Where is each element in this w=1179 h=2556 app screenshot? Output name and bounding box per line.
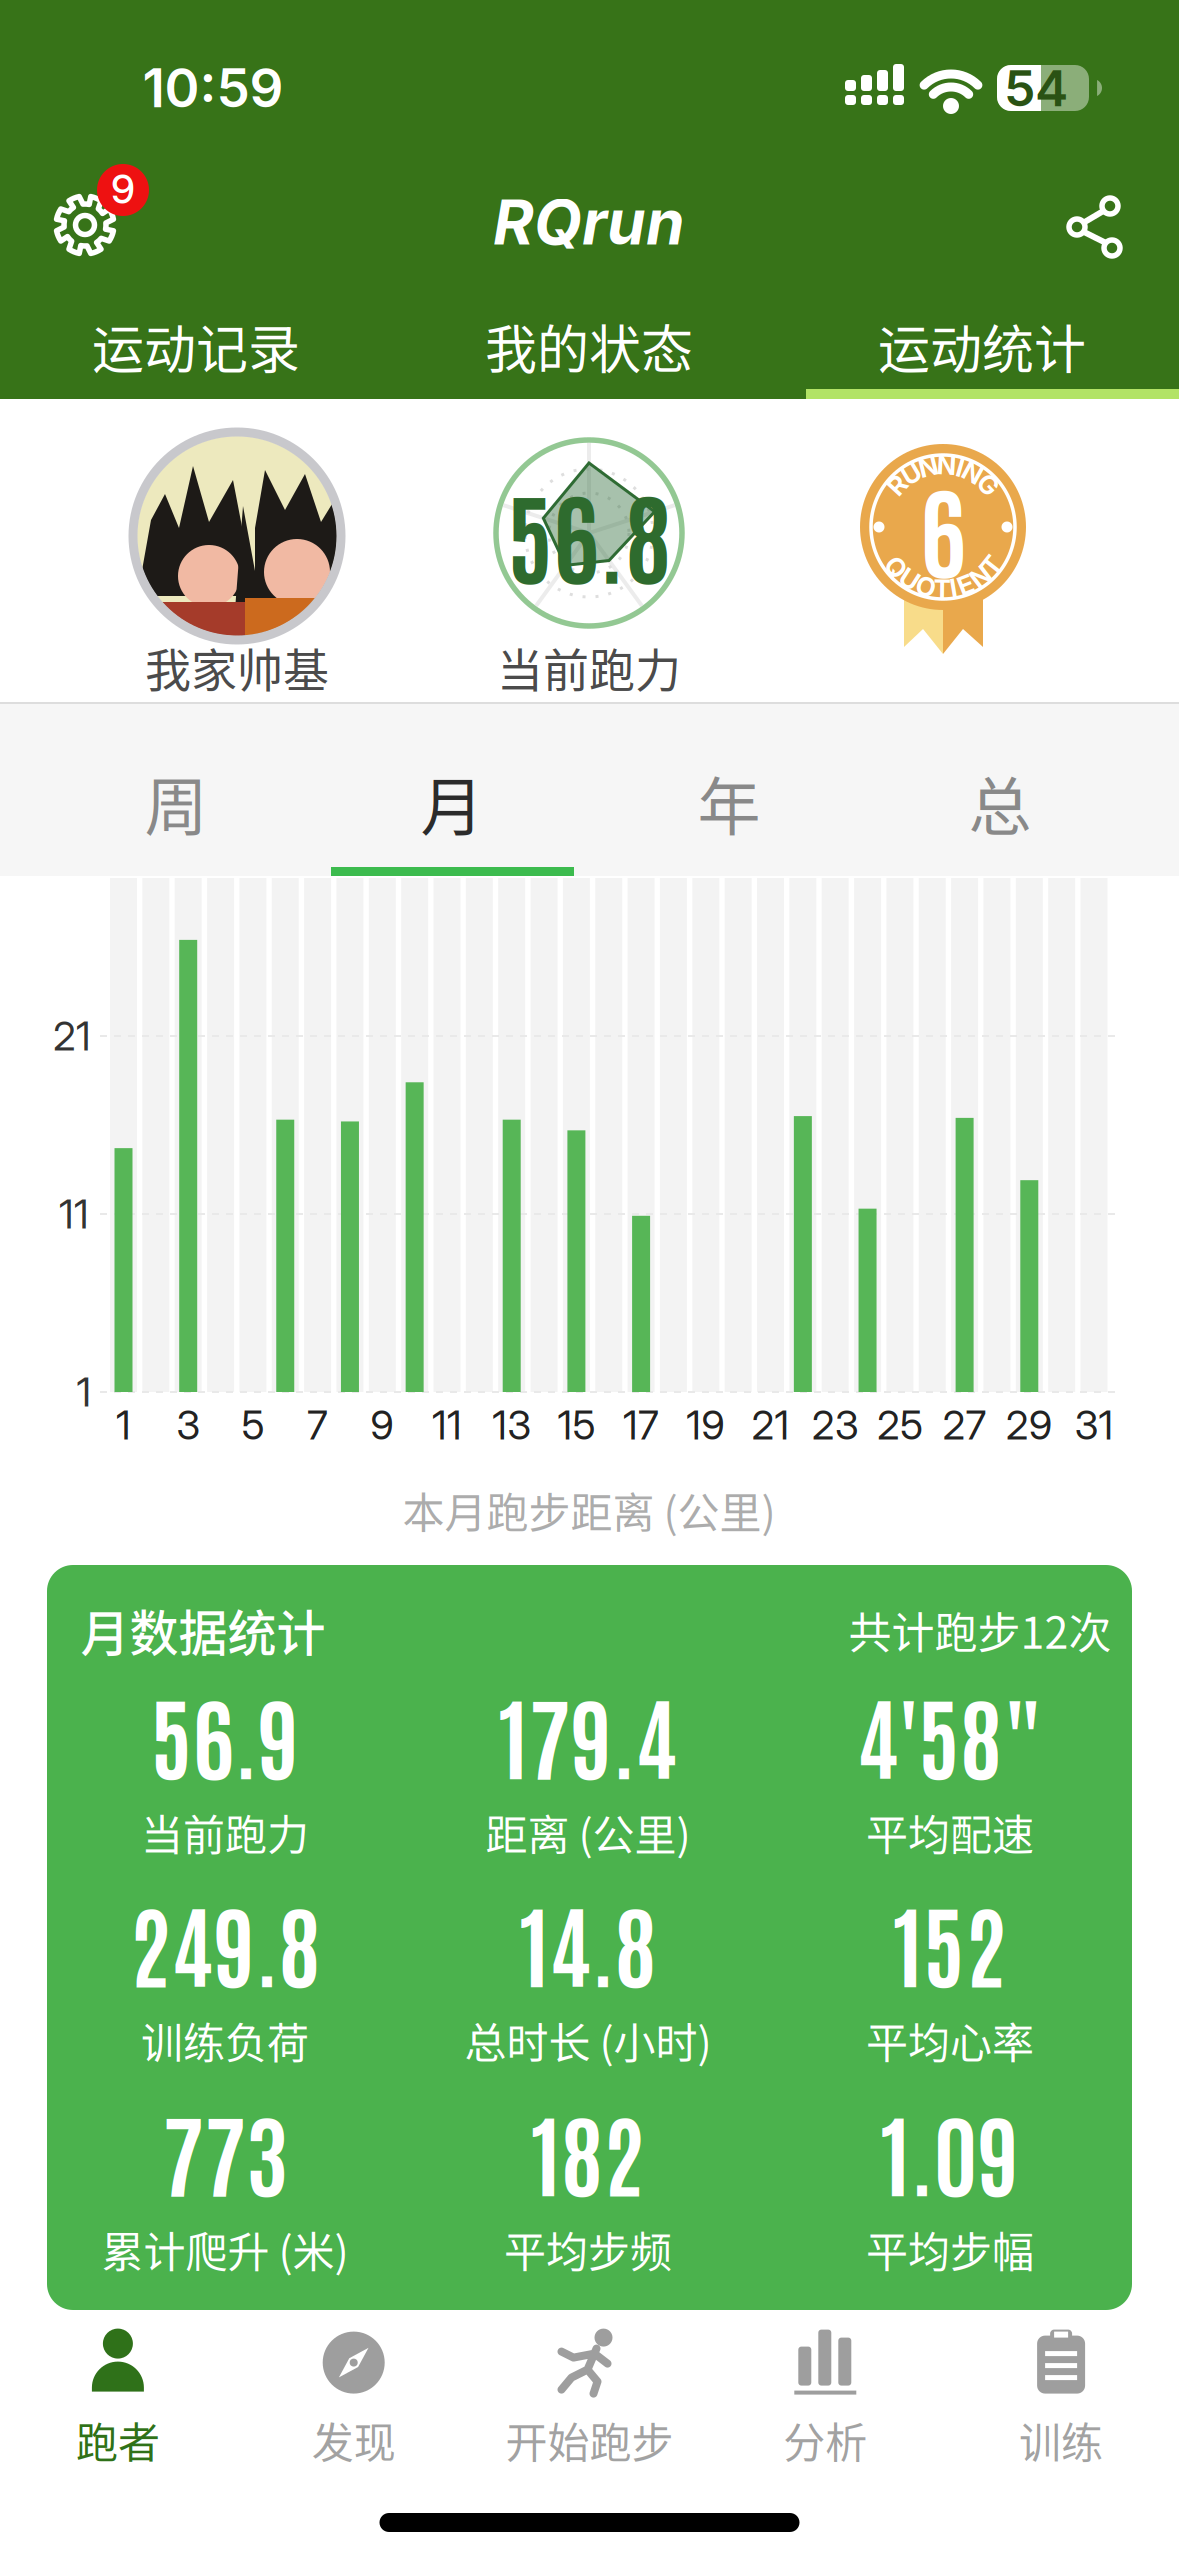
staticText: 23: [812, 1401, 859, 1449]
staticText: 11: [432, 1401, 462, 1449]
button[interactable]: 发现: [254, 2330, 454, 2470]
staticText: 月数据统计: [80, 1594, 325, 1665]
staticText: 训练: [1019, 2410, 1103, 2470]
staticText: 31: [1074, 1401, 1113, 1449]
staticText: 14.8: [519, 1883, 656, 2000]
staticText: R: [889, 469, 906, 501]
staticText: 我家帅基: [145, 634, 329, 700]
staticText: N: [937, 449, 957, 481]
button[interactable]: 运动统计: [785, 306, 1178, 386]
staticText: G: [979, 469, 998, 500]
staticText: U: [902, 458, 921, 489]
staticText: 周: [144, 756, 207, 848]
staticText: I: [950, 572, 957, 604]
staticText: 距离 (公里): [485, 1802, 690, 1863]
button[interactable]: Settings: [23, 140, 163, 280]
staticText: 5: [241, 1401, 264, 1449]
button[interactable]: 训练: [961, 2330, 1161, 2470]
staticText: 21: [53, 1012, 91, 1060]
staticText: 本月跑步距离 (公里): [402, 1480, 775, 1540]
staticText: I: [957, 452, 964, 483]
staticText: 54: [1004, 58, 1068, 118]
staticText: 25: [877, 1401, 923, 1449]
staticText: 平均心率: [866, 2010, 1034, 2071]
staticText: 当前跑力: [497, 634, 681, 700]
staticText: N: [971, 561, 991, 592]
staticText: E: [958, 569, 974, 600]
staticText: 9: [111, 165, 135, 213]
staticText: 17: [623, 1401, 659, 1449]
staticText: 1: [116, 1401, 131, 1449]
staticText: U: [900, 563, 919, 595]
staticText: 56.8: [507, 468, 671, 598]
button[interactable]: 开始跑步: [474, 2330, 704, 2470]
staticText: 179.4: [498, 1675, 677, 1792]
staticText: 累计爬升 (米): [101, 2219, 348, 2280]
staticText: 6: [920, 462, 966, 592]
staticText: 11: [59, 1190, 89, 1238]
button[interactable]: 跑者: [18, 2330, 218, 2470]
staticText: 运动记录: [92, 308, 300, 384]
staticText: O: [916, 571, 936, 602]
staticText: T: [983, 550, 1000, 581]
staticText: 平均步幅: [866, 2219, 1034, 2280]
staticText: 56.9: [150, 1675, 299, 1792]
staticText: 总时长 (小时): [464, 2010, 711, 2071]
staticText: 1.09: [880, 2092, 1019, 2209]
staticText: 773: [162, 2092, 288, 2209]
staticText: T: [934, 573, 951, 605]
staticText: 发现: [312, 2410, 396, 2470]
button[interactable]: 月: [332, 742, 572, 862]
staticText: 年: [697, 756, 760, 848]
button[interactable]: 年: [609, 742, 849, 862]
staticText: 10:59: [142, 56, 283, 120]
staticText: 3: [176, 1401, 200, 1449]
staticText: 19: [686, 1401, 725, 1449]
button[interactable]: 总: [880, 742, 1120, 862]
staticText: N: [963, 457, 983, 488]
button[interactable]: 我的状态: [392, 306, 785, 386]
staticText: RQrun: [493, 184, 685, 259]
staticText: 29: [1006, 1401, 1053, 1449]
staticText: 7: [307, 1401, 328, 1449]
staticText: 我的状态: [485, 308, 693, 384]
button[interactable]: 运动记录: [0, 306, 392, 386]
staticText: 152: [893, 1883, 1007, 2000]
staticText: 总: [968, 756, 1031, 848]
staticText: N: [918, 451, 938, 482]
staticText: 运动统计: [878, 308, 1086, 384]
button[interactable]: Share: [1061, 182, 1131, 262]
staticText: 4'58": [857, 1675, 1043, 1792]
staticText: 9: [370, 1401, 394, 1449]
staticText: 15: [557, 1401, 595, 1449]
button[interactable]: Profile: [133, 432, 341, 640]
staticText: 跑者: [76, 2410, 160, 2470]
staticText: 27: [943, 1401, 987, 1449]
staticText: 1: [76, 1368, 91, 1416]
staticText: 21: [751, 1401, 789, 1449]
staticText: 训练负荷: [141, 2010, 309, 2071]
staticText: 分析: [783, 2410, 867, 2470]
staticText: 13: [492, 1401, 531, 1449]
staticText: 共计跑步12次: [848, 1599, 1111, 1661]
staticText: 平均配速: [866, 1802, 1034, 1863]
staticText: 当前跑力: [141, 1802, 309, 1863]
staticText: 开始跑步: [505, 2410, 673, 2470]
button[interactable]: 周: [56, 742, 296, 862]
staticText: 平均步频: [504, 2219, 672, 2280]
staticText: 月: [420, 756, 483, 848]
button[interactable]: 分析: [725, 2330, 925, 2470]
staticText: 182: [531, 2092, 645, 2209]
staticText: Q: [886, 552, 906, 583]
staticText: 249.8: [129, 1883, 320, 2000]
